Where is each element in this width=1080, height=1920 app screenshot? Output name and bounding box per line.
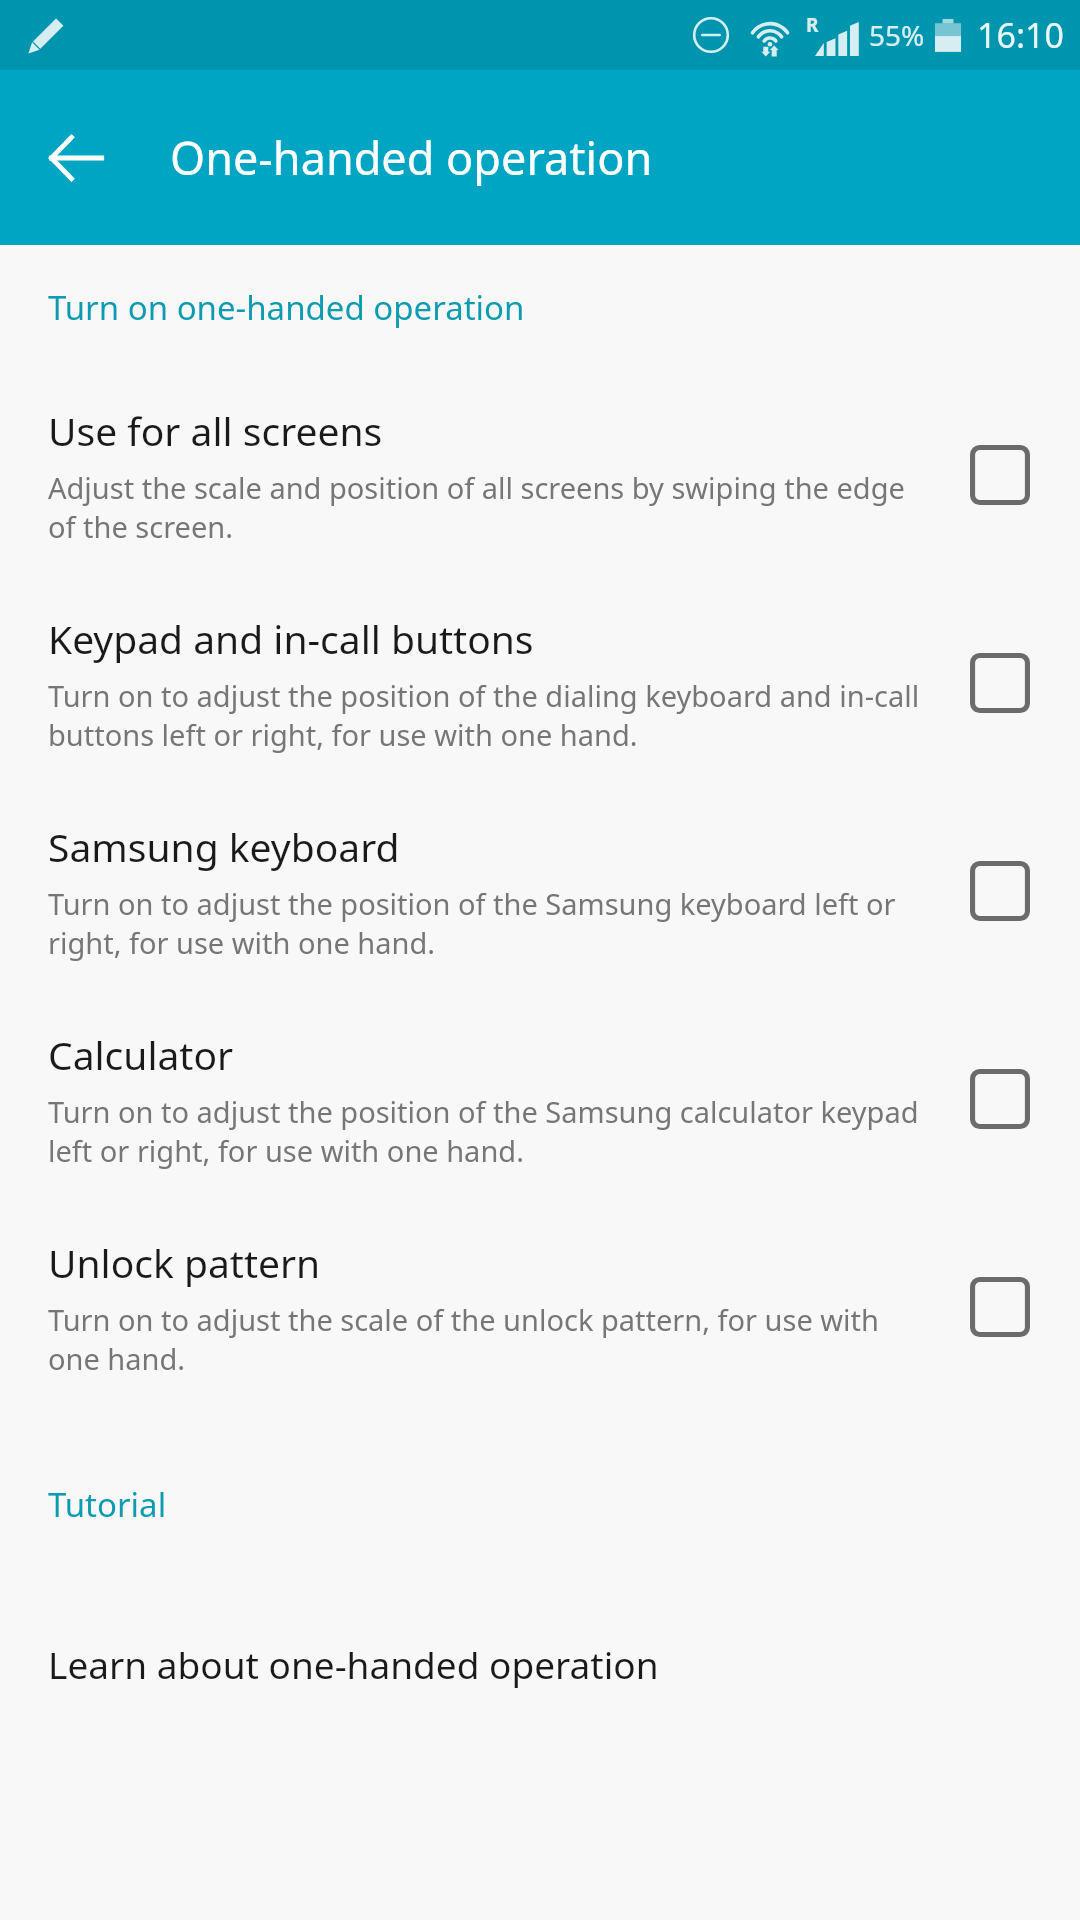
button[interactable]: Calculator (956, 1055, 1044, 1143)
staticText: Calculator (48, 1028, 234, 1081)
staticText: Adjust the scale and position of all scr… (48, 468, 930, 546)
staticText: Turn on to adjust the position of the Sa… (48, 884, 930, 962)
staticText: Turn on one-handed operation (48, 285, 525, 330)
staticText: Keypad and in-call buttons (48, 612, 534, 665)
staticText: Use for all screens (48, 404, 383, 457)
staticText: Tutorial (48, 1482, 167, 1527)
button[interactable]: Samsung keyboard (956, 847, 1044, 935)
button[interactable]: Navigate up (30, 112, 122, 204)
button[interactable]: Use for all screens (0, 400, 1080, 550)
button[interactable]: Turn on one-handed operation (0, 275, 1080, 340)
button[interactable]: Tutorial (0, 1474, 1080, 1535)
button[interactable]: Calculator (0, 1024, 1080, 1174)
staticText: 16:10 (977, 12, 1064, 58)
staticText: Turn on to adjust the position of the Sa… (48, 1092, 930, 1170)
staticText: One-handed operation (170, 127, 653, 188)
staticText: Samsung keyboard (48, 820, 400, 873)
button[interactable]: Samsung keyboard (0, 816, 1080, 966)
staticText: Unlock pattern (48, 1236, 321, 1289)
staticText: Learn about one-handed operation (48, 1639, 659, 1689)
button[interactable]: Unlock pattern (0, 1232, 1080, 1382)
button[interactable]: Unlock pattern (956, 1263, 1044, 1351)
button[interactable]: Learn about one-handed operation (0, 1631, 1080, 1697)
staticText: Turn on to adjust the scale of the unloc… (48, 1300, 930, 1378)
button[interactable]: Keypad and in-call buttons (956, 639, 1044, 727)
button[interactable]: Keypad and in-call buttons (0, 608, 1080, 758)
staticText: R (806, 12, 819, 38)
staticText: 55% (869, 16, 925, 54)
staticText: Turn on to adjust the position of the di… (48, 676, 930, 754)
button[interactable]: Use for all screens (956, 431, 1044, 519)
